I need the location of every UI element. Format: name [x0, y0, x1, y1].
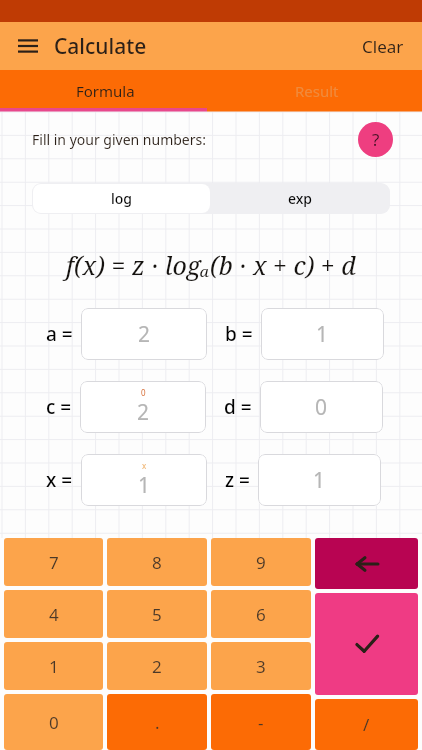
staticText: x =: [46, 467, 73, 493]
staticText: 5: [152, 603, 162, 626]
button[interactable]: Confirm: [315, 593, 418, 695]
staticText: Clear: [362, 35, 404, 58]
staticText: Formula: [76, 81, 135, 101]
staticText: -: [258, 711, 264, 734]
staticText: 3: [256, 655, 266, 678]
button[interactable]: Clear: [354, 29, 412, 64]
button[interactable]: Backspace: [315, 538, 418, 589]
button[interactable]: 0: [4, 694, 103, 750]
button[interactable]: .: [107, 694, 207, 750]
staticText: 0: [141, 387, 146, 398]
staticText: 1: [313, 466, 326, 495]
button[interactable]: log: [33, 184, 210, 213]
staticText: Fill in your given numbers:: [32, 130, 206, 149]
button[interactable]: 6: [211, 590, 311, 638]
staticText: c =: [46, 394, 72, 420]
button[interactable]: 1: [4, 642, 103, 690]
button[interactable]: 1: [261, 308, 384, 360]
button[interactable]: 7: [4, 538, 103, 586]
staticText: 1: [316, 320, 329, 349]
button[interactable]: 8: [107, 538, 207, 586]
staticText: exp: [288, 189, 313, 208]
staticText: Calculate: [54, 32, 147, 61]
staticText: b =: [225, 321, 253, 347]
staticText: z =: [225, 467, 250, 493]
button[interactable]: 2: [81, 308, 207, 360]
staticText: Result: [295, 81, 339, 101]
staticText: 2: [137, 398, 150, 427]
button[interactable]: -: [211, 694, 311, 750]
button[interactable]: Open navigation menu: [8, 26, 48, 66]
staticText: 1: [138, 471, 151, 500]
button[interactable]: 1: [258, 454, 381, 506]
button[interactable]: 0: [260, 381, 383, 433]
staticText: 1: [49, 655, 59, 678]
button[interactable]: Result: [211, 70, 422, 112]
button[interactable]: 9: [211, 538, 311, 586]
button[interactable]: exp: [211, 183, 390, 214]
staticText: ?: [372, 128, 380, 151]
button[interactable]: 4: [4, 590, 103, 638]
button[interactable]: 5: [107, 590, 207, 638]
staticText: 2: [152, 655, 162, 678]
staticText: d =: [224, 394, 252, 420]
staticText: x: [142, 460, 147, 471]
staticText: f(x) = z · logₐ(b · x + c) + d: [66, 248, 356, 282]
staticText: 4: [49, 603, 59, 626]
button[interactable]: 3: [211, 642, 311, 690]
staticText: 0: [49, 711, 59, 734]
staticText: 2: [138, 320, 151, 349]
button[interactable]: 2: [107, 642, 207, 690]
staticText: 7: [49, 551, 59, 574]
staticText: .: [155, 711, 160, 734]
staticText: 0: [315, 393, 328, 422]
button[interactable]: x: [81, 454, 207, 506]
staticText: 6: [256, 603, 266, 626]
staticText: 8: [152, 551, 162, 574]
staticText: /: [363, 713, 370, 736]
button[interactable]: Help: [358, 122, 393, 157]
button[interactable]: /: [315, 699, 418, 750]
staticText: log: [111, 189, 133, 208]
staticText: a =: [46, 321, 73, 347]
staticText: 9: [256, 551, 266, 574]
button[interactable]: Formula: [0, 70, 211, 112]
button[interactable]: 0: [80, 381, 206, 433]
